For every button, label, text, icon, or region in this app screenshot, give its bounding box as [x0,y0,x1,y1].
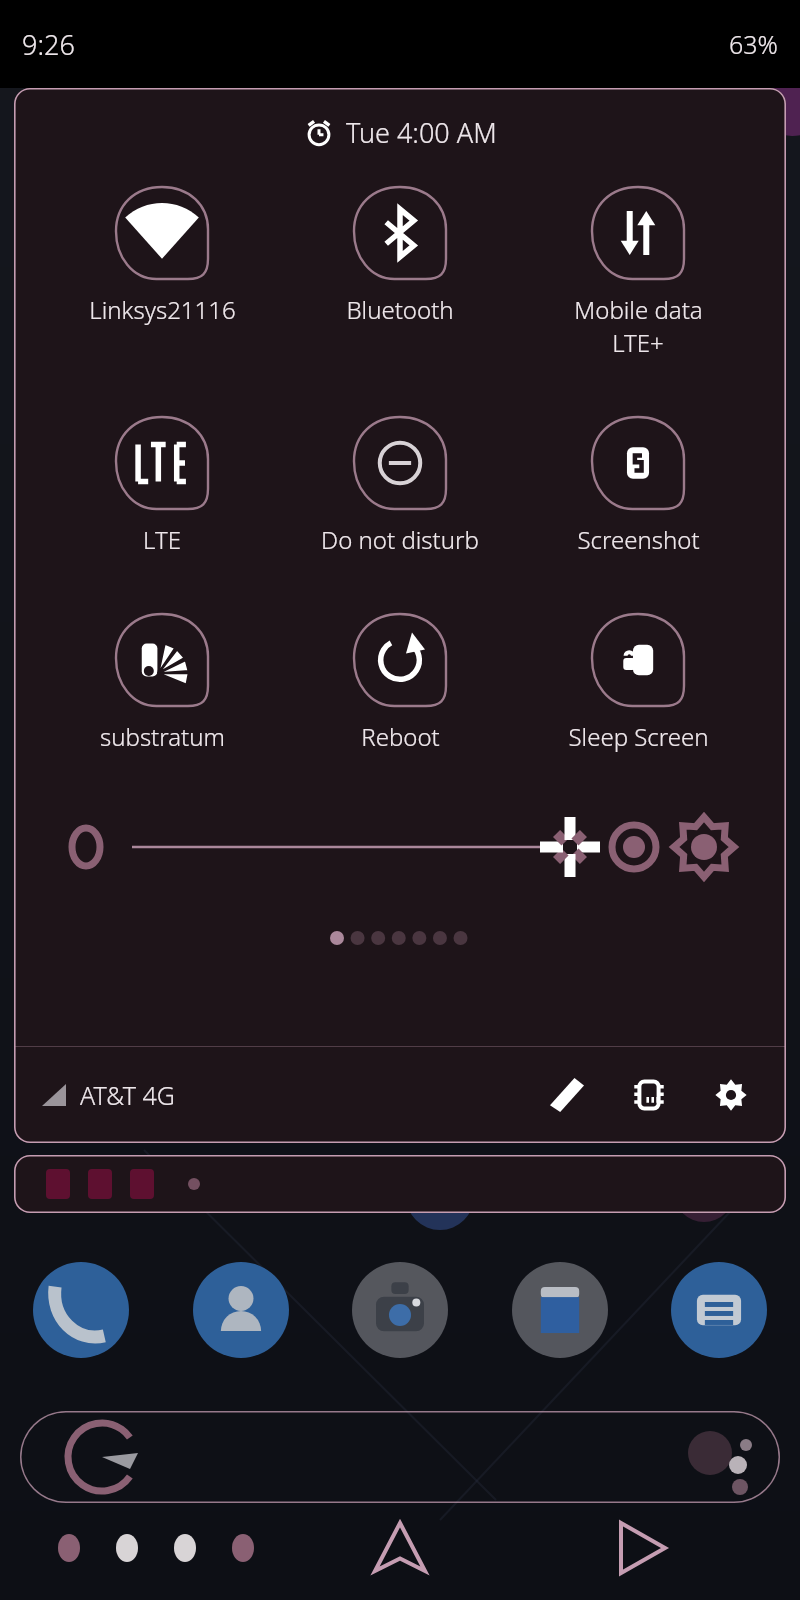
staticText: LTE [143,523,181,556]
button[interactable]: Reboot [300,614,500,753]
staticText: Screenshot [577,523,700,556]
button[interactable]: Bluetooth [300,187,500,326]
button[interactable]: Messages [664,1255,774,1365]
button[interactable]: Linksys21116 [62,187,262,326]
button[interactable]: Tue 4:00 AM [14,114,786,151]
button[interactable]: Calendar [505,1255,615,1365]
button[interactable]: SIM card [620,1066,678,1124]
button[interactable]: Edit tiles [538,1066,596,1124]
staticText: 9:26 [22,26,75,63]
button[interactable]: Settings [702,1066,760,1124]
staticText: 63% [729,27,778,61]
button[interactable] [14,1155,786,1213]
staticText: Tue 4:00 AM [346,114,497,151]
staticText: Mobile data [574,293,703,326]
button[interactable]: Back [594,1503,690,1593]
button[interactable]: substratum [62,614,262,753]
staticText: Sleep Screen [568,720,709,753]
button[interactable]: Screenshot [538,417,738,556]
staticText: LTE+ [612,326,664,359]
staticText: substratum [100,720,225,753]
button[interactable]: Camera [345,1255,455,1365]
button[interactable]: Sleep Screen [538,614,738,753]
button[interactable]: Search [20,1411,780,1503]
button[interactable] [14,815,786,879]
staticText: Reboot [361,720,440,753]
button[interactable]: Do not disturb [300,417,500,556]
button[interactable]: Home [352,1503,448,1593]
staticText: AT&T 4G [80,1078,175,1112]
staticText: Linksys21116 [89,293,236,326]
staticText: Do not disturb [321,523,479,556]
button[interactable]: Mobile data [538,187,738,359]
button[interactable]: Contacts [186,1255,296,1365]
button[interactable]: LTE [62,417,262,556]
button[interactable]: Phone [26,1255,136,1365]
button[interactable]: AT&T 4G [40,1078,175,1112]
staticText: Bluetooth [346,293,454,326]
